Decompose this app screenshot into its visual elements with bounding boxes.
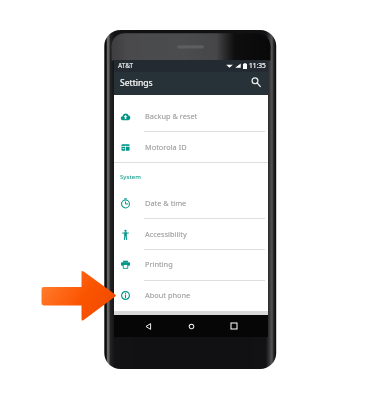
staticText: Printing <box>145 259 173 269</box>
staticText: Accessibility <box>145 229 187 239</box>
button[interactable]: Date & time <box>114 188 268 219</box>
button[interactable]: Accessibility <box>114 219 268 250</box>
staticText: System <box>120 173 141 181</box>
button[interactable]: Recents <box>223 315 244 337</box>
staticText: Motorola ID <box>145 142 187 152</box>
button[interactable]: Back <box>138 315 159 337</box>
button[interactable]: About phone <box>114 280 268 311</box>
staticText: Settings <box>120 77 153 89</box>
staticText: AT&T <box>118 61 134 70</box>
staticText: Date & time <box>145 198 187 208</box>
staticText: 11:35 <box>249 61 266 70</box>
button[interactable]: Backup & reset <box>114 101 268 132</box>
button[interactable]: Search <box>248 74 264 90</box>
staticText: About phone <box>145 290 191 300</box>
button[interactable]: Printing <box>114 249 268 280</box>
button[interactable]: Home <box>181 315 202 337</box>
staticText: Backup & reset <box>145 111 198 121</box>
button[interactable]: Motorola ID <box>114 132 268 163</box>
